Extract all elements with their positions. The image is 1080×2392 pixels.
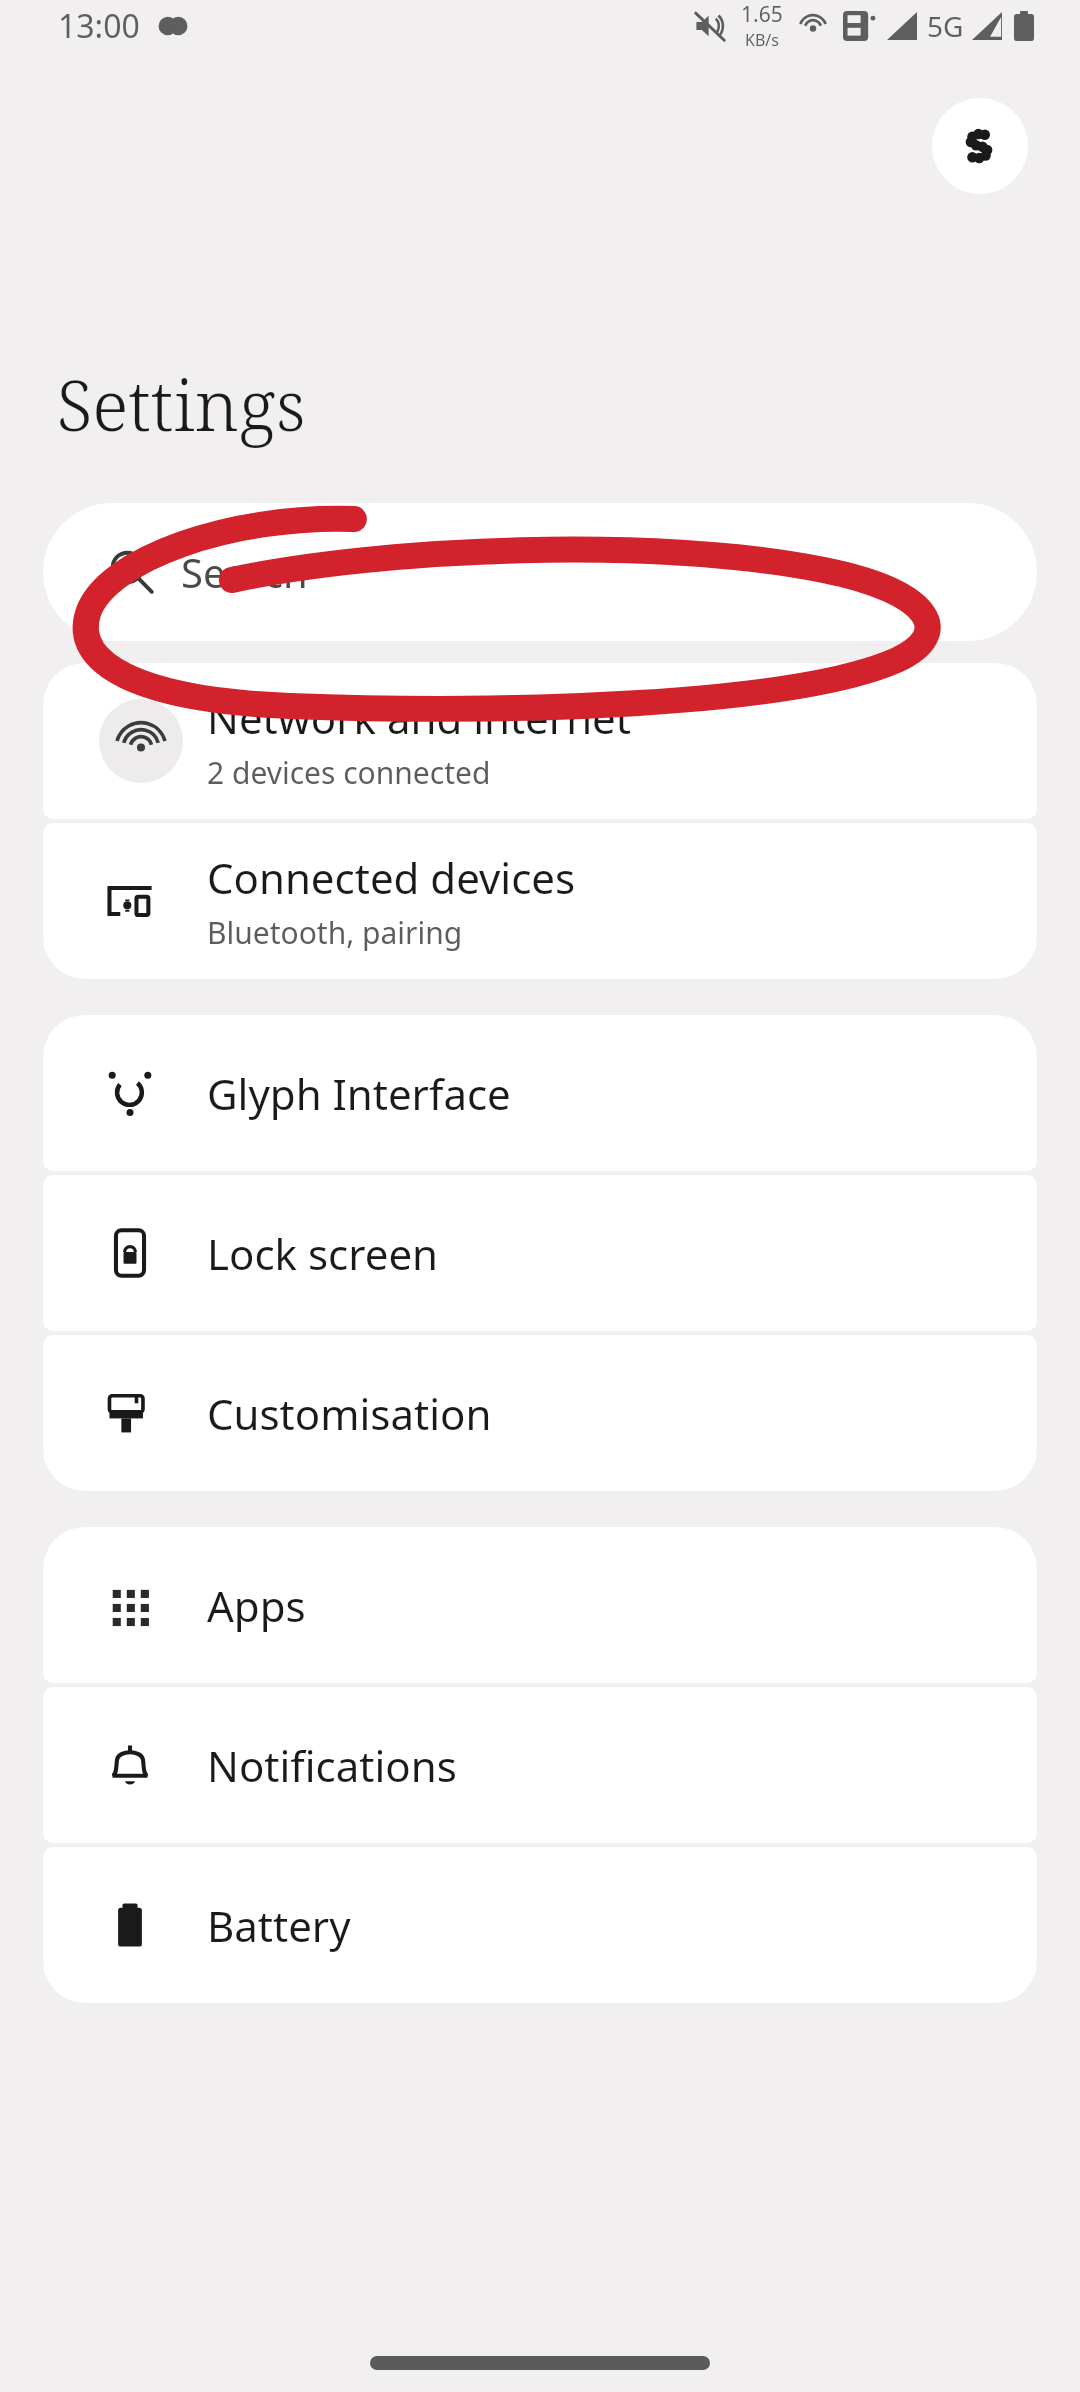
button[interactable]: Customisation (43, 1335, 1037, 1491)
staticText: Customisation (207, 1385, 492, 1442)
button[interactable]: Account (932, 98, 1028, 194)
staticText: Notifications (207, 1737, 457, 1794)
button[interactable]: Battery (43, 1847, 1037, 2003)
staticText: Search (181, 545, 308, 599)
button[interactable]: Notifications (43, 1687, 1037, 1843)
staticText: Settings (56, 356, 306, 451)
staticText: Connected devices (207, 849, 576, 906)
button[interactable]: Lock screen (43, 1175, 1037, 1331)
staticText: Apps (207, 1577, 306, 1634)
staticText: KB/s (745, 29, 779, 51)
staticText: 13:00 (58, 4, 140, 48)
staticText: Bluetooth, pairing (207, 912, 463, 953)
staticText: Lock screen (207, 1225, 439, 1282)
button[interactable]: Network and internet (43, 663, 1037, 819)
button[interactable]: Connected devices (43, 823, 1037, 979)
staticText: Battery (207, 1897, 351, 1954)
button[interactable]: Search (43, 503, 1037, 641)
staticText: Network and internet (207, 689, 631, 746)
staticText: 2 devices connected (207, 752, 491, 793)
button[interactable]: Apps (43, 1527, 1037, 1683)
button[interactable]: Glyph Interface (43, 1015, 1037, 1171)
staticText: 1.65 (741, 0, 783, 29)
staticText: Glyph Interface (207, 1065, 511, 1122)
staticText: 5G (927, 7, 964, 45)
